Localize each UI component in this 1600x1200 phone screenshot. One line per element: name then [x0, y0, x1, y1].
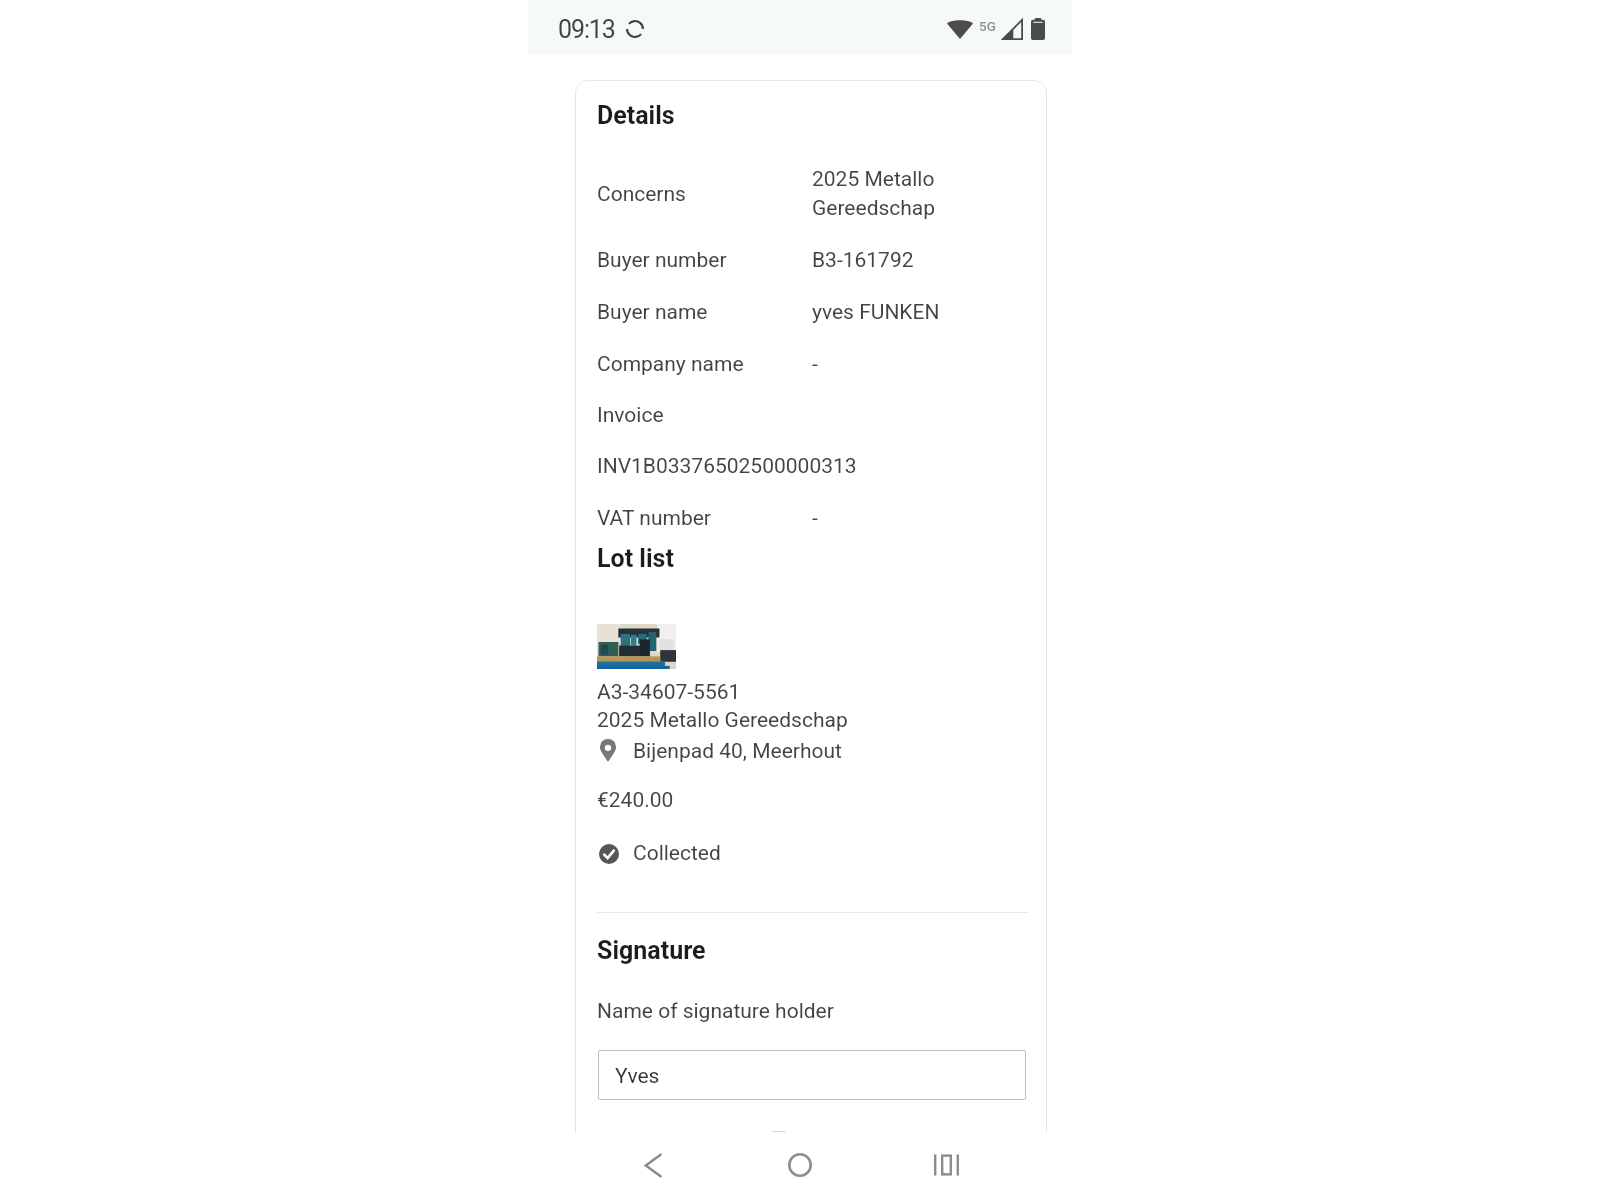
button[interactable]: Lot photo [597, 624, 676, 669]
staticText: Bijenpad 40, Meerhout [633, 739, 842, 764]
button[interactable]: Home [772, 1137, 828, 1193]
staticText: Company name [597, 352, 744, 377]
staticText: Signature [597, 936, 706, 965]
other: Location [600, 739, 616, 762]
staticText: Lot list [597, 544, 674, 573]
staticText: A3-34607-5561 [597, 680, 741, 705]
staticText: B3-161792 [812, 248, 914, 273]
staticText: Details [597, 101, 675, 130]
button[interactable]: Lot A3-34607-5561, 2025 Metallo Gereedsc… [597, 618, 1029, 890]
staticText: €240.00 [597, 788, 674, 813]
button[interactable] [598, 1050, 1026, 1100]
other: Battery [1031, 18, 1045, 40]
staticText: VAT number [597, 506, 711, 531]
staticText: Yves [615, 1064, 660, 1089]
other: Wi-Fi [947, 17, 973, 39]
staticText: 2025 Metallo [812, 167, 935, 192]
staticText: INV1B03376502500000313 [597, 454, 857, 479]
staticText: 5G [979, 18, 996, 34]
staticText: 09:13 [558, 15, 615, 44]
staticText: Name of signature holder [597, 999, 834, 1024]
staticText: Gereedschap [812, 196, 936, 221]
staticText: 2025 Metallo Gereedschap [597, 708, 848, 733]
staticText: - [812, 352, 818, 377]
staticText: Buyer number [597, 248, 727, 273]
staticText: Invoice [597, 403, 664, 428]
button[interactable]: Back [625, 1137, 681, 1193]
other: Collected [599, 844, 619, 864]
other: Sync [625, 20, 645, 38]
button[interactable]: Recent apps [918, 1137, 974, 1193]
staticText: Concerns [597, 182, 686, 207]
staticText: - [812, 506, 818, 531]
staticText: Collected [633, 841, 721, 866]
staticText: yves FUNKEN [812, 300, 940, 325]
other: Mobile signal [1002, 19, 1023, 40]
staticText: Buyer name [597, 300, 708, 325]
